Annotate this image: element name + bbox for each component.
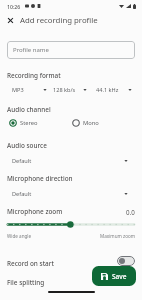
staticText: MP3 <box>12 86 24 94</box>
staticText: Record on start <box>7 259 54 268</box>
staticText: 128 kb/s <box>53 86 76 94</box>
button[interactable]: Close <box>0 12 20 29</box>
button[interactable]: Record on start toggle <box>117 256 135 266</box>
button[interactable]: Profile name <box>7 41 135 59</box>
button[interactable]: 44.1 kHz <box>96 83 132 96</box>
button[interactable]: Default <box>12 154 128 167</box>
staticText: Audio source <box>7 141 47 150</box>
button[interactable]: 128 kb/s <box>53 83 87 96</box>
staticText: Microphone zoom <box>7 207 63 216</box>
staticText: File splitting <box>7 278 45 287</box>
staticText: Recording format <box>7 71 61 80</box>
staticText: Default <box>12 190 32 198</box>
staticText: Default <box>12 157 32 165</box>
staticText: Stereo <box>20 119 38 127</box>
staticText: Wide angle <box>7 233 32 239</box>
staticText: Mono <box>83 119 99 127</box>
staticText: 44.1 kHz <box>96 86 119 94</box>
button[interactable]: MP3 <box>12 83 47 96</box>
button[interactable]: Default <box>12 187 128 200</box>
staticText: Profile name <box>13 46 49 54</box>
staticText: Audio channel <box>7 105 51 114</box>
staticText: 10:26 <box>7 3 21 10</box>
button[interactable]: Mono <box>72 116 135 130</box>
button[interactable]: Stereo <box>9 116 70 130</box>
staticText: Save <box>112 272 127 281</box>
staticText: Maximum zoom <box>100 233 135 239</box>
staticText: Add recording profile <box>20 15 98 26</box>
staticText: Microphone direction <box>7 174 73 183</box>
button[interactable]: Save <box>92 266 136 286</box>
staticText: 0.0 <box>126 208 135 216</box>
